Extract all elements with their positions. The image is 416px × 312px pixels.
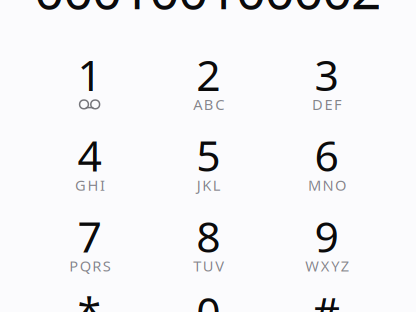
staticText: JKL (197, 175, 221, 195)
staticText: 0 (196, 283, 220, 312)
button[interactable]: 6 (281, 128, 373, 206)
button[interactable]: 7 (44, 209, 136, 287)
staticText: PQRS (69, 256, 111, 276)
staticText: 1 (78, 46, 102, 103)
button[interactable]: * (44, 285, 136, 312)
staticText: 7 (78, 208, 102, 264)
staticText: * (78, 283, 102, 312)
staticText: ABC (193, 95, 224, 114)
staticText: 4 (78, 127, 102, 183)
staticText: DEF (312, 95, 342, 114)
staticText: TUV (193, 256, 224, 276)
button[interactable]: # (281, 285, 373, 312)
staticText: 000100100002 (34, 0, 382, 24)
staticText: MNO (308, 175, 346, 195)
button[interactable]: 0 (162, 285, 254, 312)
button[interactable]: 3 (281, 47, 373, 125)
staticText: # (313, 283, 341, 312)
button[interactable]: 9 (281, 209, 373, 287)
staticText: 6 (315, 127, 339, 183)
button[interactable]: 2 (162, 47, 254, 125)
button[interactable]: 4 (44, 128, 136, 206)
button[interactable]: 5 (162, 128, 254, 206)
staticText: 5 (196, 127, 220, 183)
staticText: WXYZ (305, 256, 349, 276)
staticText: 8 (196, 208, 220, 264)
staticText: 9 (315, 208, 339, 264)
staticText: 2 (196, 46, 220, 103)
button[interactable]: 1 (44, 47, 136, 125)
staticText: 3 (315, 46, 339, 103)
staticText: GHI (75, 175, 105, 195)
button[interactable]: 8 (162, 209, 254, 287)
